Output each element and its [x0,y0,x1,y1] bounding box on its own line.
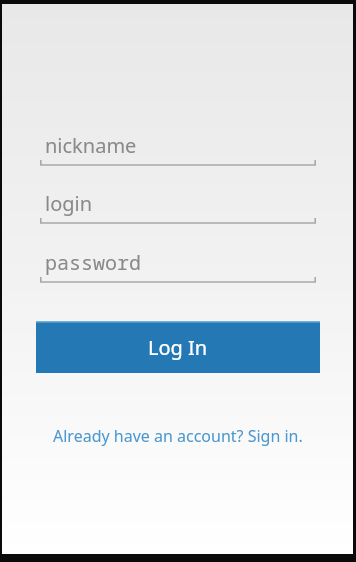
staticText: login [45,190,93,217]
button[interactable]: login [40,184,316,224]
staticText: password [45,249,141,276]
staticText: nickname [45,132,137,159]
button[interactable]: Already have an account? Sign in. [53,425,303,447]
button[interactable]: nickname [40,126,316,166]
staticText: Already have an account? Sign in. [53,425,303,447]
button[interactable]: Log In [36,321,320,373]
staticText: Log In [148,334,208,361]
button[interactable]: password [40,243,316,283]
